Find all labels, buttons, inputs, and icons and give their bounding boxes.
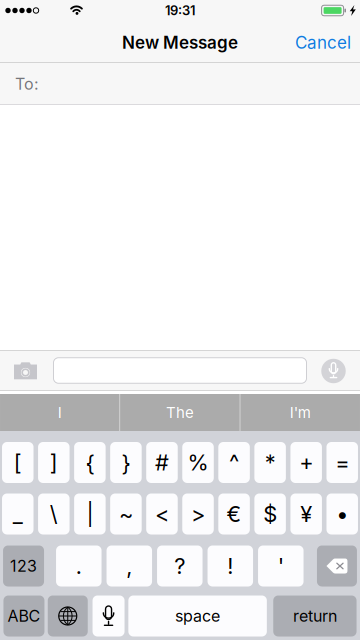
staticText: | <box>86 501 93 527</box>
staticText: < <box>155 501 169 527</box>
staticText: ] <box>50 449 58 476</box>
button[interactable]: { <box>74 442 106 483</box>
button[interactable]: = <box>326 442 358 483</box>
staticText: return <box>293 606 337 626</box>
button[interactable]: 123 <box>3 545 44 586</box>
button[interactable]: • <box>326 493 358 534</box>
staticText: ' <box>278 553 284 579</box>
staticText: % <box>187 449 208 476</box>
button[interactable]: I'm <box>241 394 360 431</box>
staticText: Cancel <box>295 32 351 53</box>
button[interactable]: ^ <box>218 442 250 483</box>
button[interactable]: return <box>273 595 356 636</box>
staticText: $ <box>263 501 277 527</box>
staticText: { <box>85 449 94 476</box>
staticText: ^ <box>229 449 239 476</box>
staticText: The <box>166 403 194 421</box>
staticText: _ <box>13 501 23 527</box>
staticText: • <box>336 501 348 527</box>
staticText: ! <box>227 553 233 579</box>
button[interactable]: # <box>146 442 178 483</box>
button[interactable]: € <box>218 493 250 534</box>
button[interactable]: ABC <box>3 595 44 636</box>
button[interactable]: , <box>107 545 152 586</box>
staticText: # <box>155 449 169 476</box>
button[interactable]: [ <box>2 442 33 483</box>
button[interactable]: \ <box>38 493 70 534</box>
button[interactable]: . <box>56 545 102 586</box>
staticText: ¥ <box>300 501 312 527</box>
staticText: \ <box>50 501 58 527</box>
button[interactable]: $ <box>254 493 286 534</box>
button[interactable]: * <box>254 442 286 483</box>
button[interactable]: _ <box>2 493 33 534</box>
button[interactable]: > <box>182 493 214 534</box>
staticText: ? <box>174 553 185 579</box>
button[interactable]: Take photo <box>14 362 37 379</box>
staticText: , <box>126 553 132 579</box>
staticText: + <box>299 449 313 476</box>
button[interactable]: | <box>74 493 106 534</box>
staticText: I <box>58 403 62 421</box>
button[interactable]: I <box>0 394 119 431</box>
button[interactable]: } <box>110 442 142 483</box>
staticText: . <box>76 553 82 579</box>
staticText: New Message <box>122 32 238 53</box>
staticText: I'm <box>290 403 311 421</box>
button[interactable]: Dictate <box>321 359 346 383</box>
button[interactable]: ~ <box>110 493 142 534</box>
button[interactable]: ? <box>157 545 203 586</box>
staticText: space <box>175 606 220 626</box>
staticText: 123 <box>10 556 37 576</box>
staticText: 19:31 <box>165 3 195 18</box>
button[interactable]: Cancel <box>295 22 360 63</box>
button[interactable]: + <box>290 442 322 483</box>
button[interactable]: ' <box>258 545 304 586</box>
staticText: * <box>265 449 276 476</box>
button[interactable]: space <box>128 595 267 636</box>
staticText: ABC <box>7 606 40 626</box>
button[interactable]: ! <box>208 545 253 586</box>
button[interactable]: % <box>182 442 214 483</box>
button[interactable]: ] <box>38 442 70 483</box>
button[interactable]: The <box>120 394 240 431</box>
staticText: To: <box>15 74 39 94</box>
button[interactable]: Delete <box>317 545 357 586</box>
staticText: } <box>121 449 130 476</box>
staticText: ~ <box>119 501 133 527</box>
staticText: [ <box>14 449 22 476</box>
button[interactable]: ¥ <box>290 493 322 534</box>
staticText: € <box>227 501 242 527</box>
staticText: = <box>335 449 349 476</box>
staticText: > <box>191 501 205 527</box>
button[interactable]: Dictate <box>93 595 125 636</box>
button[interactable]: < <box>146 493 178 534</box>
button[interactable]: Next keyboard <box>48 595 88 636</box>
